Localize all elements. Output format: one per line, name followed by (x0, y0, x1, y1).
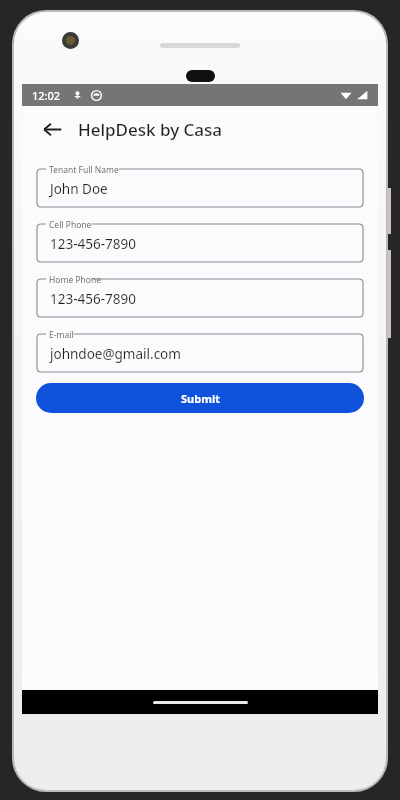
button[interactable]: Home Phone (36, 272, 364, 318)
staticText: E-mail (49, 329, 74, 341)
staticText: Submit (181, 391, 220, 406)
staticText: Cell Phone (49, 219, 92, 231)
staticText: Tenant Full Name (49, 164, 119, 176)
staticText: 123-456-7890 (50, 290, 136, 308)
button[interactable]: Submit (36, 383, 364, 413)
button[interactable]: Back (36, 113, 68, 145)
button[interactable]: E-mail (36, 327, 364, 373)
staticText: 123-456-7890 (50, 235, 136, 253)
button[interactable]: Cell Phone (36, 217, 364, 263)
staticText: Home Phone (49, 274, 101, 286)
staticText: John Doe (50, 180, 108, 198)
button[interactable]: Tenant Full Name (36, 162, 364, 208)
staticText: HelpDesk by Casa (78, 118, 223, 141)
staticText: johndoe@gmail.com (50, 345, 181, 363)
staticText: 12:02 (32, 88, 61, 103)
